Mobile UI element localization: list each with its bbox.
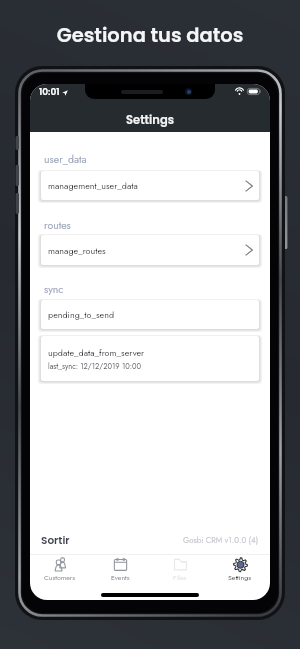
staticText: management_user_data <box>48 179 138 192</box>
staticText: user_data <box>44 152 87 167</box>
staticText: 10:01 <box>39 86 60 99</box>
button[interactable]: Files <box>150 555 210 584</box>
staticText: Settings <box>228 573 252 583</box>
staticText: pending_to_send <box>48 308 115 321</box>
staticText: Sortir <box>41 533 70 548</box>
staticText: Gosbi CRM v1.0.0 (4) <box>183 534 259 546</box>
staticText: Files <box>173 573 187 583</box>
staticText: Customers <box>44 573 76 583</box>
staticText: Events <box>111 573 130 583</box>
button[interactable]: pending_to_send <box>41 300 259 329</box>
staticText: sync <box>44 282 64 297</box>
button[interactable]: management_user_data <box>41 171 259 200</box>
button[interactable]: update_data_from_server <box>41 336 259 381</box>
staticText: last_sync: 12/12/2019 10:00 <box>48 361 142 372</box>
staticText: update_data_from_server <box>48 346 145 359</box>
staticText: Settings <box>30 112 270 128</box>
button[interactable]: Customers <box>30 555 90 584</box>
button[interactable]: Events <box>90 555 150 584</box>
button[interactable]: Settings <box>210 555 270 584</box>
staticText: routes <box>44 218 71 233</box>
button[interactable]: manage_routes <box>41 235 259 265</box>
staticText: Gestiona tus datos <box>0 22 300 49</box>
staticText: manage_routes <box>48 244 106 257</box>
button[interactable]: Sortir <box>40 528 71 553</box>
